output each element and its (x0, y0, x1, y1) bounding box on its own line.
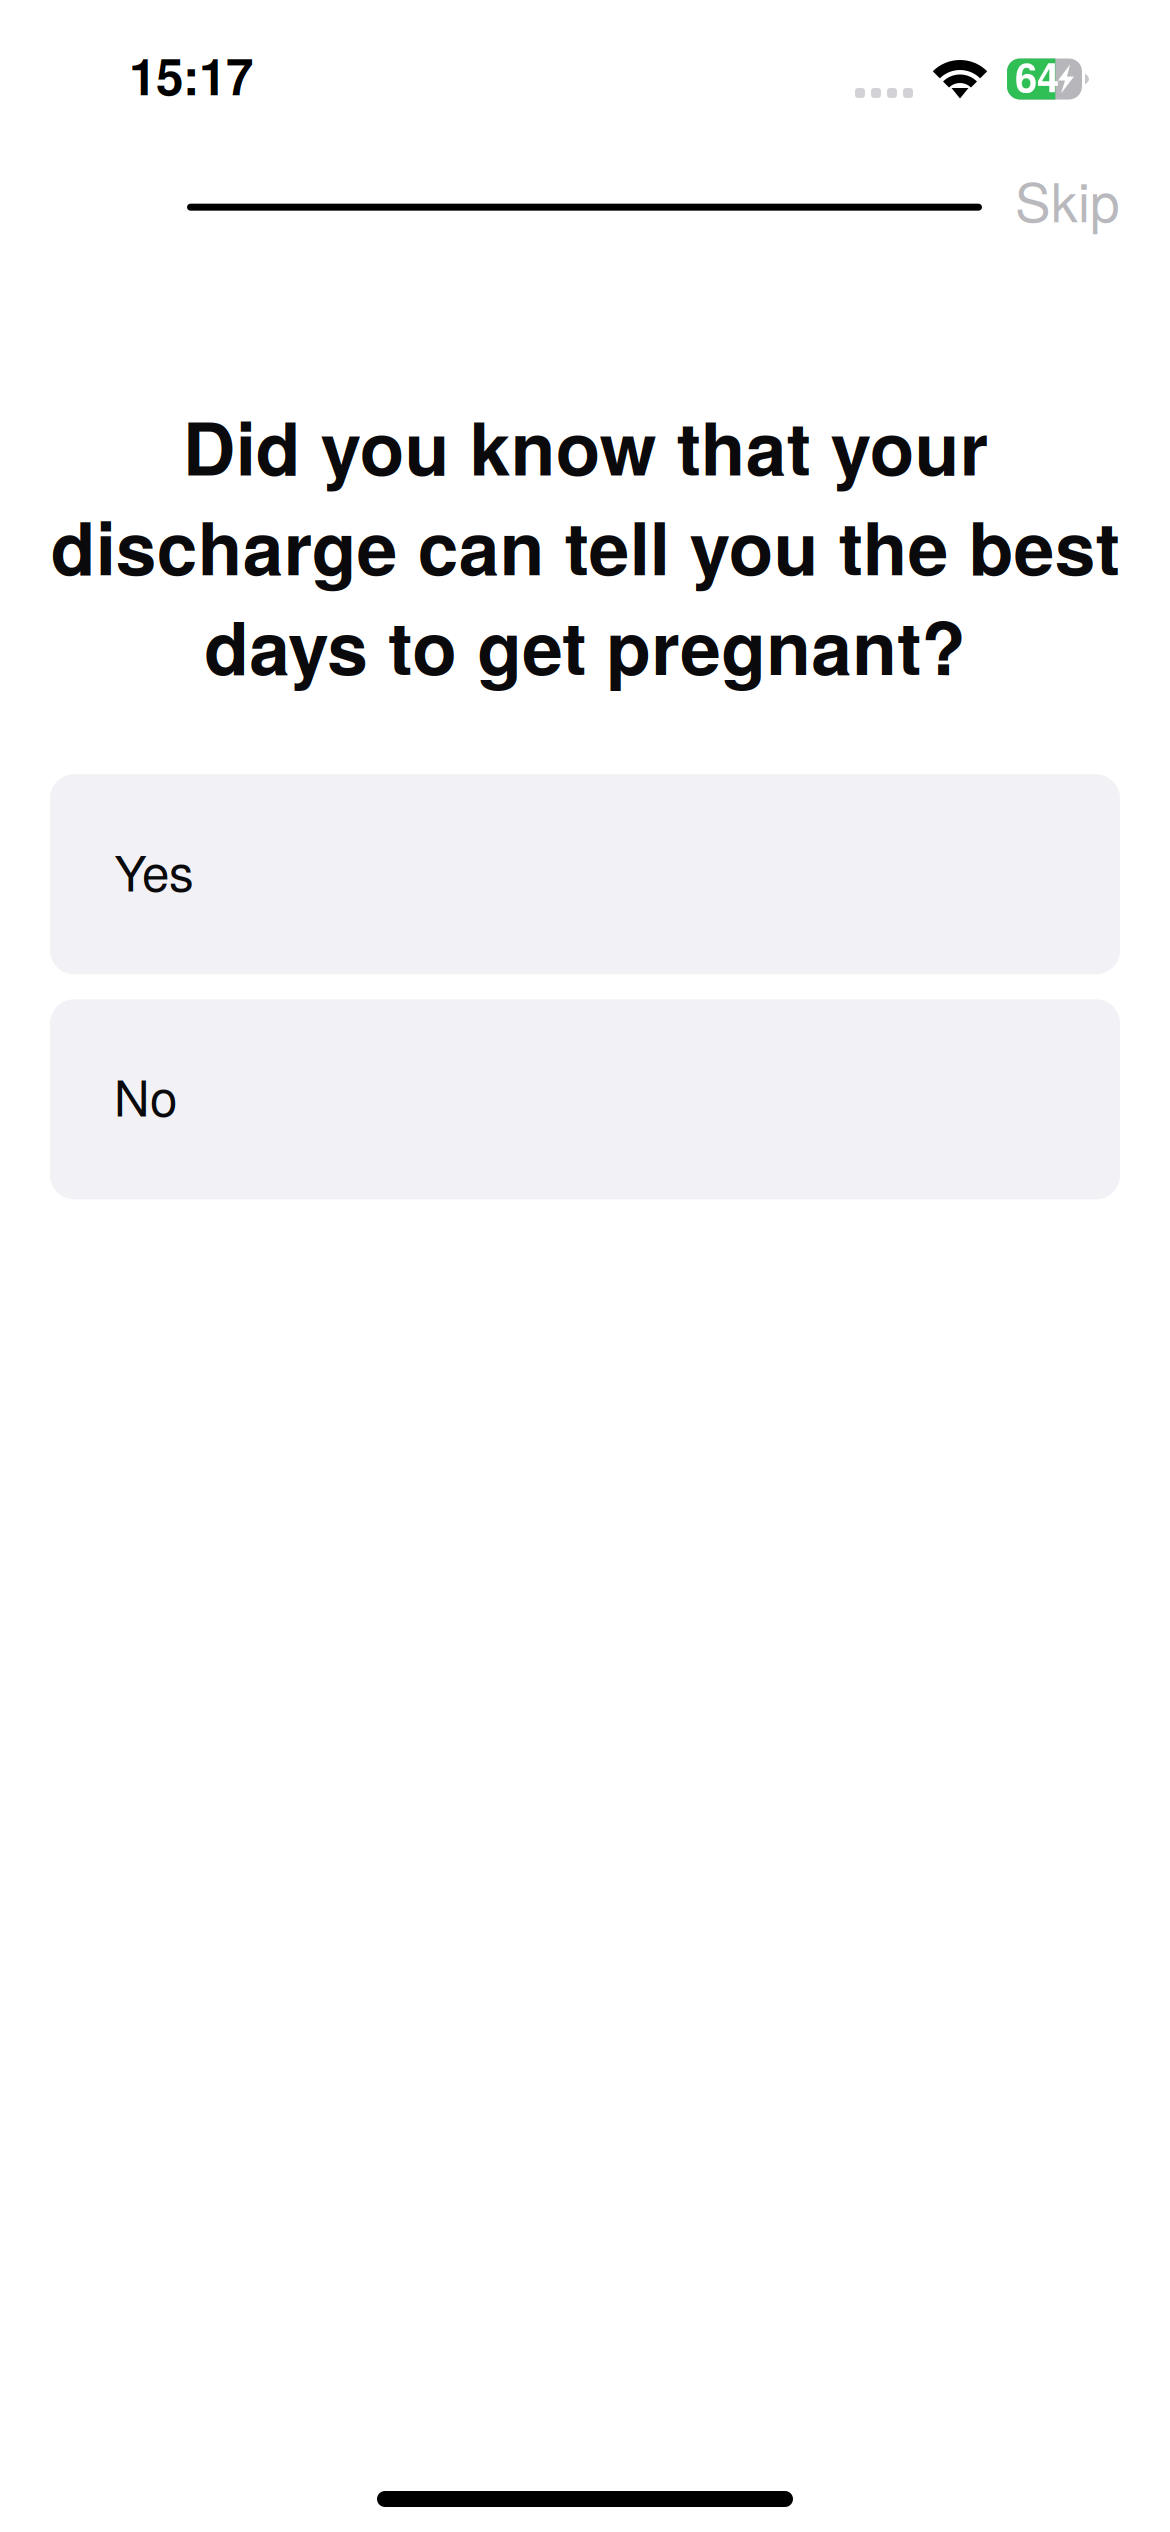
staticText: Yes (114, 835, 194, 906)
staticText: 64 (1015, 47, 1059, 105)
button[interactable]: Skip (982, 151, 1120, 263)
staticText: Skip (1015, 161, 1120, 237)
staticText: Did you know that your discharge can tel… (50, 393, 1119, 697)
button[interactable]: No (50, 999, 1120, 1199)
button[interactable]: Yes (50, 774, 1120, 974)
staticText: 15:17 (129, 40, 253, 110)
staticText: No (114, 1060, 177, 1131)
